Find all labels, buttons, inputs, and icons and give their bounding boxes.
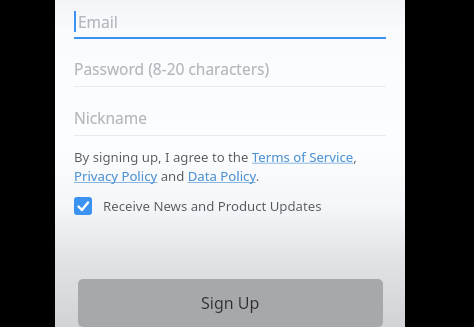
other: Receive news checkbox, checked: [74, 197, 92, 215]
button[interactable]: Sign Up: [78, 279, 383, 327]
staticText: Receive News and Product Updates: [103, 197, 322, 215]
button[interactable]: By signing up, I agree to the Terms of S…: [74, 148, 389, 185]
staticText: Password (8-20 characters): [74, 58, 270, 79]
button[interactable]: Email: [55, 0, 405, 42]
staticText: Email: [78, 11, 118, 32]
staticText: Sign Up: [201, 292, 260, 314]
button[interactable]: Password (8-20 characters): [55, 49, 405, 87]
button[interactable]: Nickname: [55, 98, 405, 136]
staticText: By signing up, I agree to the Terms of S…: [74, 148, 389, 185]
staticText: Nickname: [74, 107, 148, 128]
button[interactable]: Receive news checkbox, checked: [74, 197, 391, 215]
